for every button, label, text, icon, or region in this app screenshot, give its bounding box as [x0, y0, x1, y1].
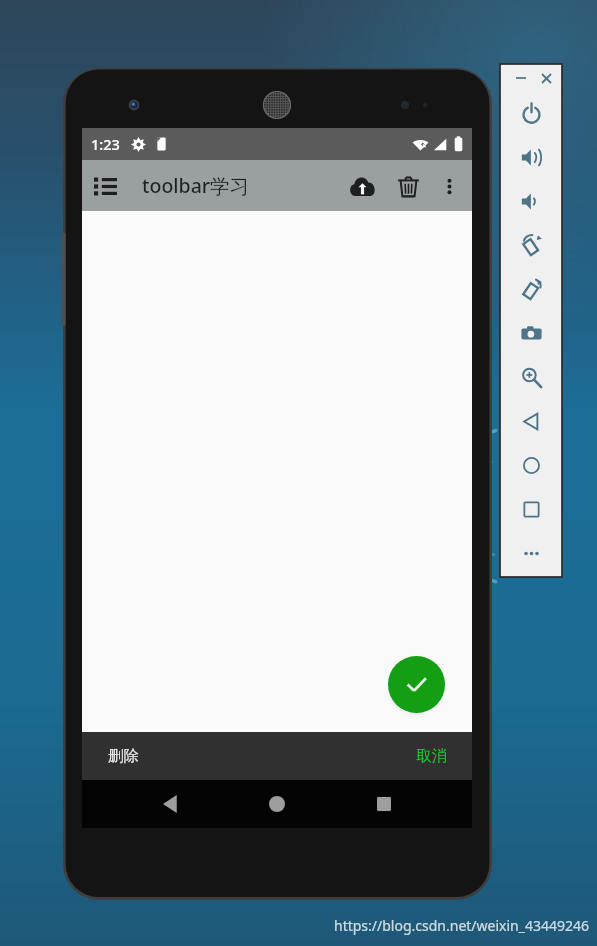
button[interactable]: Take screenshot — [500, 311, 562, 355]
button[interactable]: Back — [148, 782, 192, 826]
button[interactable]: Upload — [339, 163, 385, 209]
button[interactable]: Close — [536, 68, 556, 88]
button[interactable]: Home — [500, 443, 562, 487]
button[interactable]: 删除 — [82, 732, 472, 780]
button[interactable]: Confirm — [388, 656, 445, 713]
button[interactable]: Recent apps — [362, 782, 406, 826]
button[interactable]: Rotate right — [500, 267, 562, 311]
button[interactable]: Delete — [385, 163, 431, 209]
button[interactable]: Back — [500, 399, 562, 443]
button[interactable]: Rotate left — [500, 223, 562, 267]
staticText: https://blog.csdn.net/weixin_43449246 — [334, 916, 590, 935]
button[interactable]: Power — [500, 91, 562, 135]
button[interactable]: Volume down — [500, 179, 562, 223]
button[interactable]: More — [500, 531, 562, 575]
staticText: 1:23 — [91, 134, 120, 154]
staticText: 删除 — [108, 746, 139, 766]
staticText: 取消 — [416, 746, 447, 766]
button[interactable]: Navigation menu — [82, 163, 128, 209]
button[interactable]: Overview — [500, 487, 562, 531]
button[interactable]: Volume up — [500, 135, 562, 179]
button[interactable]: 取消 — [416, 746, 447, 766]
button[interactable]: Zoom — [500, 355, 562, 399]
button[interactable]: Minimize — [511, 68, 531, 88]
button[interactable]: More options — [431, 163, 467, 209]
button[interactable]: toolbar学习 — [142, 172, 250, 199]
button[interactable]: Home — [255, 782, 299, 826]
